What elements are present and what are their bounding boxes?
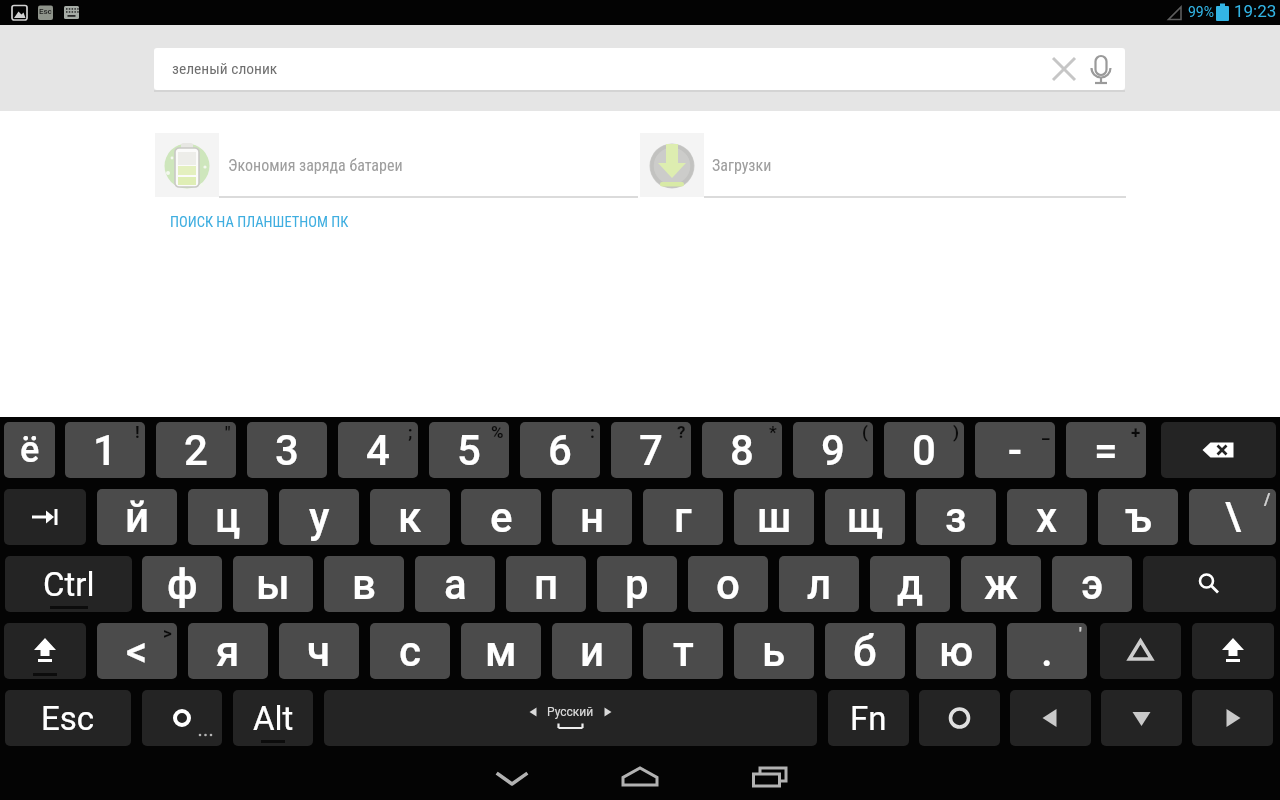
staticText: 4 (366, 426, 390, 475)
button[interactable]: к (370, 489, 450, 545)
staticText: о (716, 560, 740, 609)
button[interactable]: ы (233, 556, 313, 612)
staticText: 19:23 (1234, 1, 1277, 21)
button[interactable]: а (415, 556, 495, 612)
button[interactable]: т (643, 623, 723, 679)
button[interactable]: п (506, 556, 586, 612)
staticText: б (853, 627, 877, 676)
button[interactable] (919, 690, 1000, 746)
staticText: а (444, 560, 467, 609)
staticText: . (1041, 627, 1053, 676)
staticText: ч (307, 627, 331, 676)
staticText: р (625, 560, 649, 609)
button[interactable] (4, 623, 86, 679)
button[interactable]: ц (188, 489, 268, 545)
button[interactable]: ь (734, 623, 814, 679)
staticText: _ (1042, 422, 1050, 442)
button[interactable]: х (1007, 489, 1087, 545)
button[interactable] (1161, 422, 1276, 478)
button[interactable] (1010, 690, 1091, 746)
button[interactable]: ч (279, 623, 359, 679)
button[interactable]: в (324, 556, 404, 612)
button[interactable]: Русский (324, 690, 817, 746)
button[interactable]: е (461, 489, 541, 545)
button[interactable]: ю (916, 623, 996, 679)
button[interactable] (490, 766, 534, 792)
staticText: в (352, 560, 376, 609)
button[interactable]: ж (961, 556, 1041, 612)
button[interactable] (618, 764, 662, 790)
button[interactable] (142, 690, 222, 746)
staticText: Русский (547, 705, 594, 719)
button[interactable]: ф (142, 556, 222, 612)
button[interactable]: и (552, 623, 632, 679)
button[interactable] (1100, 623, 1181, 679)
button[interactable]: ш (734, 489, 814, 545)
staticText: = (1094, 426, 1118, 475)
staticText: \ (1225, 495, 1241, 540)
staticText: " (225, 422, 231, 442)
button[interactable] (1086, 48, 1125, 90)
staticText: : (590, 422, 595, 442)
button[interactable]: 3 (247, 422, 327, 478)
button[interactable]: 7 (611, 422, 691, 478)
staticText: ь (762, 627, 786, 676)
button[interactable] (748, 764, 792, 790)
button[interactable]: у (279, 489, 359, 545)
button[interactable]: н (552, 489, 632, 545)
button[interactable]: Загрузки (640, 133, 1126, 197)
button[interactable]: щ (825, 489, 905, 545)
button[interactable]: э (1052, 556, 1132, 612)
button[interactable]: м (461, 623, 541, 679)
button[interactable]: з (916, 489, 996, 545)
staticText: ъ (1125, 493, 1152, 542)
staticText: н (580, 493, 605, 542)
staticText: и (580, 627, 605, 676)
button[interactable]: б (825, 623, 905, 679)
button[interactable] (1192, 690, 1273, 746)
button[interactable]: 0 (884, 422, 964, 478)
button[interactable] (1040, 48, 1086, 90)
button[interactable]: Alt (233, 690, 313, 746)
button[interactable]: Ctrl (5, 556, 132, 612)
button[interactable] (1101, 690, 1182, 746)
button[interactable]: 4 (338, 422, 418, 478)
button[interactable]: Esc (5, 690, 131, 746)
button[interactable]: д (870, 556, 950, 612)
button[interactable]: я (188, 623, 268, 679)
staticText: Ctrl (43, 565, 95, 604)
button[interactable]: 8 (702, 422, 782, 478)
staticText: Экономия заряда батареи (228, 156, 403, 175)
button[interactable]: . (1007, 623, 1087, 679)
staticText: ) (953, 422, 959, 442)
button[interactable]: 1 (65, 422, 145, 478)
button[interactable]: ПОИСК НА ПЛАНШЕТНОМ ПК (160, 208, 359, 237)
button[interactable]: й (97, 489, 177, 545)
button[interactable] (1192, 623, 1274, 679)
button[interactable]: - (975, 422, 1055, 478)
button[interactable]: 2 (156, 422, 236, 478)
button[interactable]: с (370, 623, 450, 679)
staticText: г (674, 493, 692, 542)
staticText: Esc (39, 7, 52, 16)
button[interactable] (1143, 556, 1276, 612)
button[interactable]: 9 (793, 422, 873, 478)
button[interactable]: = (1066, 422, 1146, 478)
staticText: * (769, 422, 777, 442)
button[interactable]: \ (1189, 489, 1276, 545)
button[interactable]: р (597, 556, 677, 612)
button[interactable]: л (779, 556, 859, 612)
button[interactable]: 6 (520, 422, 600, 478)
button[interactable]: о (688, 556, 768, 612)
button[interactable]: ъ (1098, 489, 1178, 545)
staticText: ж (984, 560, 1018, 609)
staticText: й (125, 493, 150, 542)
button[interactable] (4, 489, 86, 545)
button[interactable]: Fn (828, 690, 909, 746)
button[interactable]: 5 (429, 422, 509, 478)
button[interactable]: < (97, 623, 177, 679)
button[interactable]: ё (4, 422, 55, 478)
button[interactable]: г (643, 489, 723, 545)
button[interactable]: Экономия заряда батареи (155, 133, 638, 197)
button[interactable]: зеленый слоник (154, 48, 1125, 90)
